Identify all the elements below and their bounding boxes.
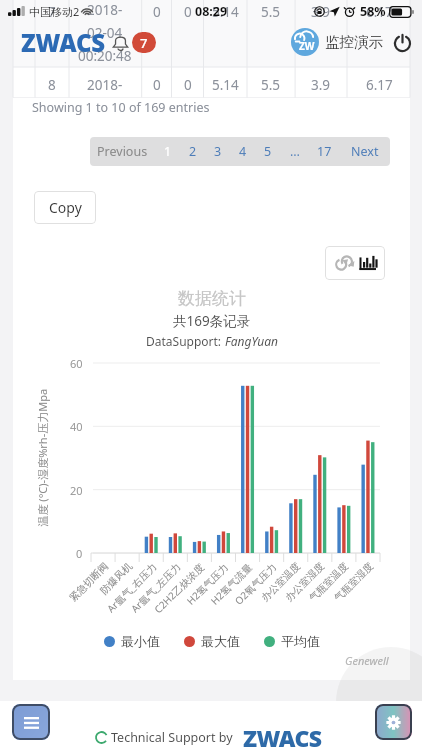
staticText: DataSupport:	[146, 333, 225, 349]
staticText: 08:29	[195, 3, 228, 20]
button[interactable]: Power off	[392, 32, 413, 53]
button[interactable]: 3	[205, 137, 230, 166]
staticText: FangYuan	[225, 333, 278, 349]
staticText: 温度 (°C)-湿度%rh-压力Mpa	[34, 388, 49, 526]
staticText: 4	[239, 143, 247, 160]
staticText: ZW	[299, 39, 315, 53]
staticText: 紧急切断阀	[66, 560, 111, 604]
staticText: Showing 1 to 10 of 169 entries	[32, 99, 210, 116]
staticText: 3	[214, 143, 222, 160]
staticText: 气瓶室湿度	[331, 560, 376, 604]
button[interactable]: …	[280, 137, 309, 166]
staticText: 7	[140, 34, 148, 52]
button[interactable]: 最小值	[104, 633, 160, 649]
staticText: 5.5	[261, 76, 281, 94]
staticText: 0	[153, 76, 161, 94]
button[interactable]: 7	[132, 32, 156, 53]
staticText: 防爆风机	[97, 560, 135, 597]
staticText: 02-04	[87, 24, 123, 42]
staticText: 最大值	[201, 633, 240, 649]
staticText: Copy	[49, 198, 82, 217]
staticText: 20	[70, 483, 83, 498]
staticText: Ar氩气_右压力	[104, 560, 159, 615]
staticText: 5	[264, 143, 272, 160]
staticText: 0	[153, 3, 161, 21]
staticText: 共169条记录	[173, 312, 251, 330]
staticText: Genewell	[345, 653, 389, 668]
staticText: 中国移动2	[29, 4, 80, 19]
staticText: 0	[184, 3, 192, 21]
staticText: 办公室温度	[258, 560, 303, 604]
staticText: 40	[70, 419, 83, 434]
staticText: 数据统计	[178, 288, 246, 309]
staticText: 00:20:48	[78, 47, 132, 65]
button[interactable]: 5	[255, 137, 280, 166]
staticText: 0	[184, 76, 192, 94]
button[interactable]: Refresh	[334, 253, 354, 273]
staticText: 5.14	[212, 3, 239, 21]
staticText: 3.9	[311, 76, 331, 94]
staticText: 气瓶室温度	[306, 560, 351, 604]
staticText: 平均值	[281, 633, 320, 649]
staticText: 6.17	[366, 3, 393, 21]
staticText: 3.9	[311, 3, 331, 21]
staticText: 17	[317, 143, 332, 160]
staticText: 2018-	[87, 1, 123, 19]
staticText: 58%	[360, 3, 386, 20]
button[interactable]: 4	[230, 137, 255, 166]
staticText: 5.14	[212, 76, 239, 94]
button[interactable]: 平均值	[264, 633, 320, 649]
staticText: ZWACS	[243, 722, 322, 750]
button[interactable]: Copy	[34, 191, 96, 224]
staticText: C2H2乙炔浓度	[151, 560, 207, 615]
staticText: 6.17	[366, 76, 393, 94]
staticText: 0	[76, 546, 83, 561]
staticText: H2氢气压力	[183, 560, 231, 607]
staticText: 60	[70, 356, 83, 371]
staticText: Technical Support by	[111, 729, 233, 746]
staticText: Ar氩气_左压力	[128, 560, 183, 615]
staticText: …	[290, 143, 300, 160]
button[interactable]: 17	[309, 137, 340, 166]
staticText: 1	[164, 143, 172, 160]
button[interactable]: Next	[340, 137, 390, 166]
staticText: H2氢气流量	[207, 560, 255, 607]
staticText: O2氧气压力	[231, 560, 279, 607]
button[interactable]: Settings	[375, 704, 412, 740]
staticText: ZWACS	[21, 26, 106, 58]
button[interactable]: Previous	[90, 137, 155, 166]
button[interactable]: Menu	[12, 704, 50, 740]
staticText: 7	[48, 3, 56, 21]
staticText: 监控演示	[325, 33, 383, 51]
staticText: Previous	[97, 143, 148, 160]
staticText: 8	[48, 76, 56, 94]
staticText: 2	[189, 143, 197, 160]
button[interactable]: 最大值	[184, 633, 240, 649]
staticText: 最小值	[121, 633, 160, 649]
staticText: 2018-	[87, 76, 123, 94]
staticText: 办公室湿度	[282, 560, 327, 604]
button[interactable]: 2	[180, 137, 205, 166]
button[interactable]: 1	[155, 137, 180, 166]
staticText: 5.5	[261, 3, 281, 21]
button[interactable]: Chart view	[358, 254, 377, 273]
staticText: Next	[351, 143, 379, 160]
